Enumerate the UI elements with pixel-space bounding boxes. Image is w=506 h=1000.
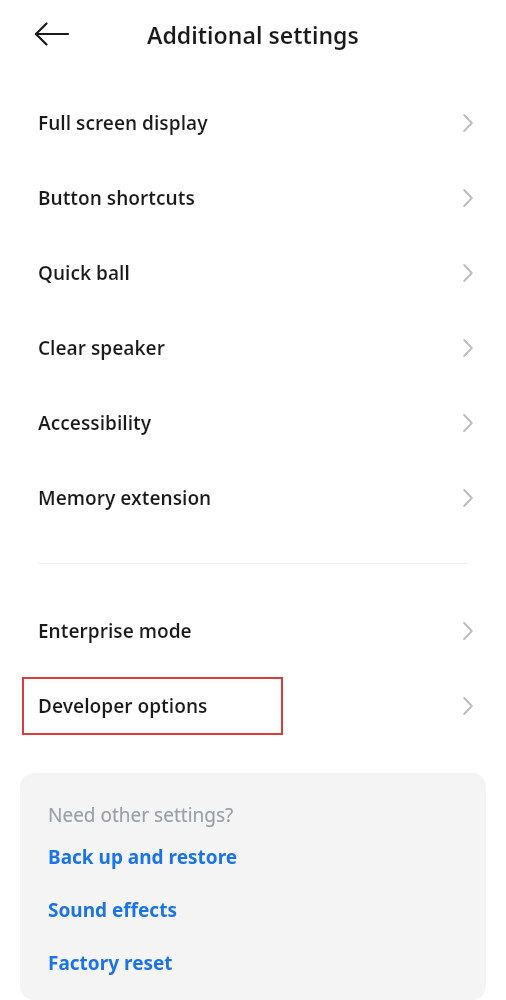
button[interactable]: Factory reset xyxy=(20,936,486,989)
button[interactable]: Back up and restore xyxy=(20,830,486,883)
button[interactable]: Memory extension xyxy=(0,460,506,535)
staticText: Back up and restore xyxy=(48,844,238,870)
button[interactable]: Sound effects xyxy=(20,883,486,936)
staticText: Quick ball xyxy=(38,260,130,286)
staticText: Full screen display xyxy=(38,110,208,136)
button[interactable]: Back xyxy=(30,12,74,56)
button[interactable]: Developer options xyxy=(0,668,506,743)
button[interactable]: Button shortcuts xyxy=(0,160,506,235)
staticText: Factory reset xyxy=(48,950,173,976)
staticText: Accessibility xyxy=(38,410,152,436)
staticText: Button shortcuts xyxy=(38,185,195,211)
button[interactable]: Clear speaker xyxy=(0,310,506,385)
button[interactable]: Full screen display xyxy=(0,85,506,160)
button[interactable]: Quick ball xyxy=(0,235,506,310)
staticText: Memory extension xyxy=(38,485,212,511)
staticText: Developer options xyxy=(38,693,208,719)
button[interactable]: Enterprise mode xyxy=(0,593,506,668)
staticText: Need other settings? xyxy=(48,802,234,828)
button[interactable]: Accessibility xyxy=(0,385,506,460)
staticText: Enterprise mode xyxy=(38,618,192,644)
staticText: Clear speaker xyxy=(38,335,165,361)
staticText: Sound effects xyxy=(48,897,177,923)
staticText: Additional settings xyxy=(147,19,359,50)
